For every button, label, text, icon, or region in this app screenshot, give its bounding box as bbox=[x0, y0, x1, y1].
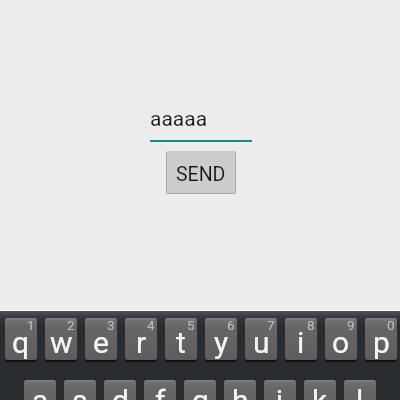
staticText: 8 bbox=[307, 318, 315, 333]
button[interactable]: 8 bbox=[285, 318, 317, 360]
staticText: SEND bbox=[176, 163, 226, 186]
staticText: s bbox=[72, 383, 88, 400]
staticText: p bbox=[373, 325, 390, 360]
staticText: 4 bbox=[147, 318, 155, 333]
button[interactable]: 1 bbox=[5, 318, 37, 360]
staticText: k bbox=[312, 383, 328, 400]
staticText: j bbox=[276, 383, 284, 400]
button[interactable]: a bbox=[24, 380, 56, 400]
staticText: 3 bbox=[107, 318, 115, 333]
staticText: a bbox=[32, 383, 49, 400]
button[interactable]: k bbox=[304, 380, 336, 400]
staticText: h bbox=[232, 383, 249, 400]
staticText: 6 bbox=[227, 318, 235, 333]
staticText: q bbox=[12, 325, 30, 360]
staticText: d bbox=[112, 383, 129, 400]
staticText: u bbox=[253, 325, 270, 360]
staticText: f bbox=[155, 383, 166, 400]
button[interactable]: 6 bbox=[205, 318, 237, 360]
staticText: i bbox=[297, 325, 305, 360]
button[interactable]: 5 bbox=[165, 318, 197, 360]
button[interactable]: 2 bbox=[45, 318, 77, 360]
staticText: 2 bbox=[67, 318, 75, 333]
staticText: 5 bbox=[187, 318, 195, 333]
staticText: 9 bbox=[347, 318, 355, 333]
button[interactable]: 7 bbox=[245, 318, 277, 360]
staticText: l bbox=[356, 383, 364, 400]
staticText: r bbox=[136, 325, 147, 360]
button[interactable]: f bbox=[144, 380, 176, 400]
staticText: 1 bbox=[27, 318, 35, 333]
button[interactable]: 3 bbox=[85, 318, 117, 360]
staticText: g bbox=[192, 383, 209, 400]
staticText: o bbox=[332, 325, 350, 360]
staticText: 7 bbox=[267, 318, 275, 333]
button[interactable]: j bbox=[264, 380, 296, 400]
button[interactable]: g bbox=[184, 380, 216, 400]
button[interactable]: d bbox=[104, 380, 136, 400]
button[interactable]: 9 bbox=[325, 318, 357, 360]
staticText: w bbox=[50, 325, 73, 360]
button[interactable]: h bbox=[224, 380, 256, 400]
button[interactable]: l bbox=[344, 380, 376, 400]
staticText: 0 bbox=[387, 318, 395, 333]
staticText: y bbox=[214, 325, 229, 360]
button[interactable]: s bbox=[64, 380, 96, 400]
staticText: aaaaa bbox=[150, 107, 208, 132]
button[interactable]: 0 bbox=[365, 318, 397, 360]
staticText: t bbox=[176, 325, 186, 360]
staticText: e bbox=[93, 325, 109, 360]
button[interactable]: SEND bbox=[167, 152, 235, 193]
button[interactable]: 4 bbox=[125, 318, 157, 360]
